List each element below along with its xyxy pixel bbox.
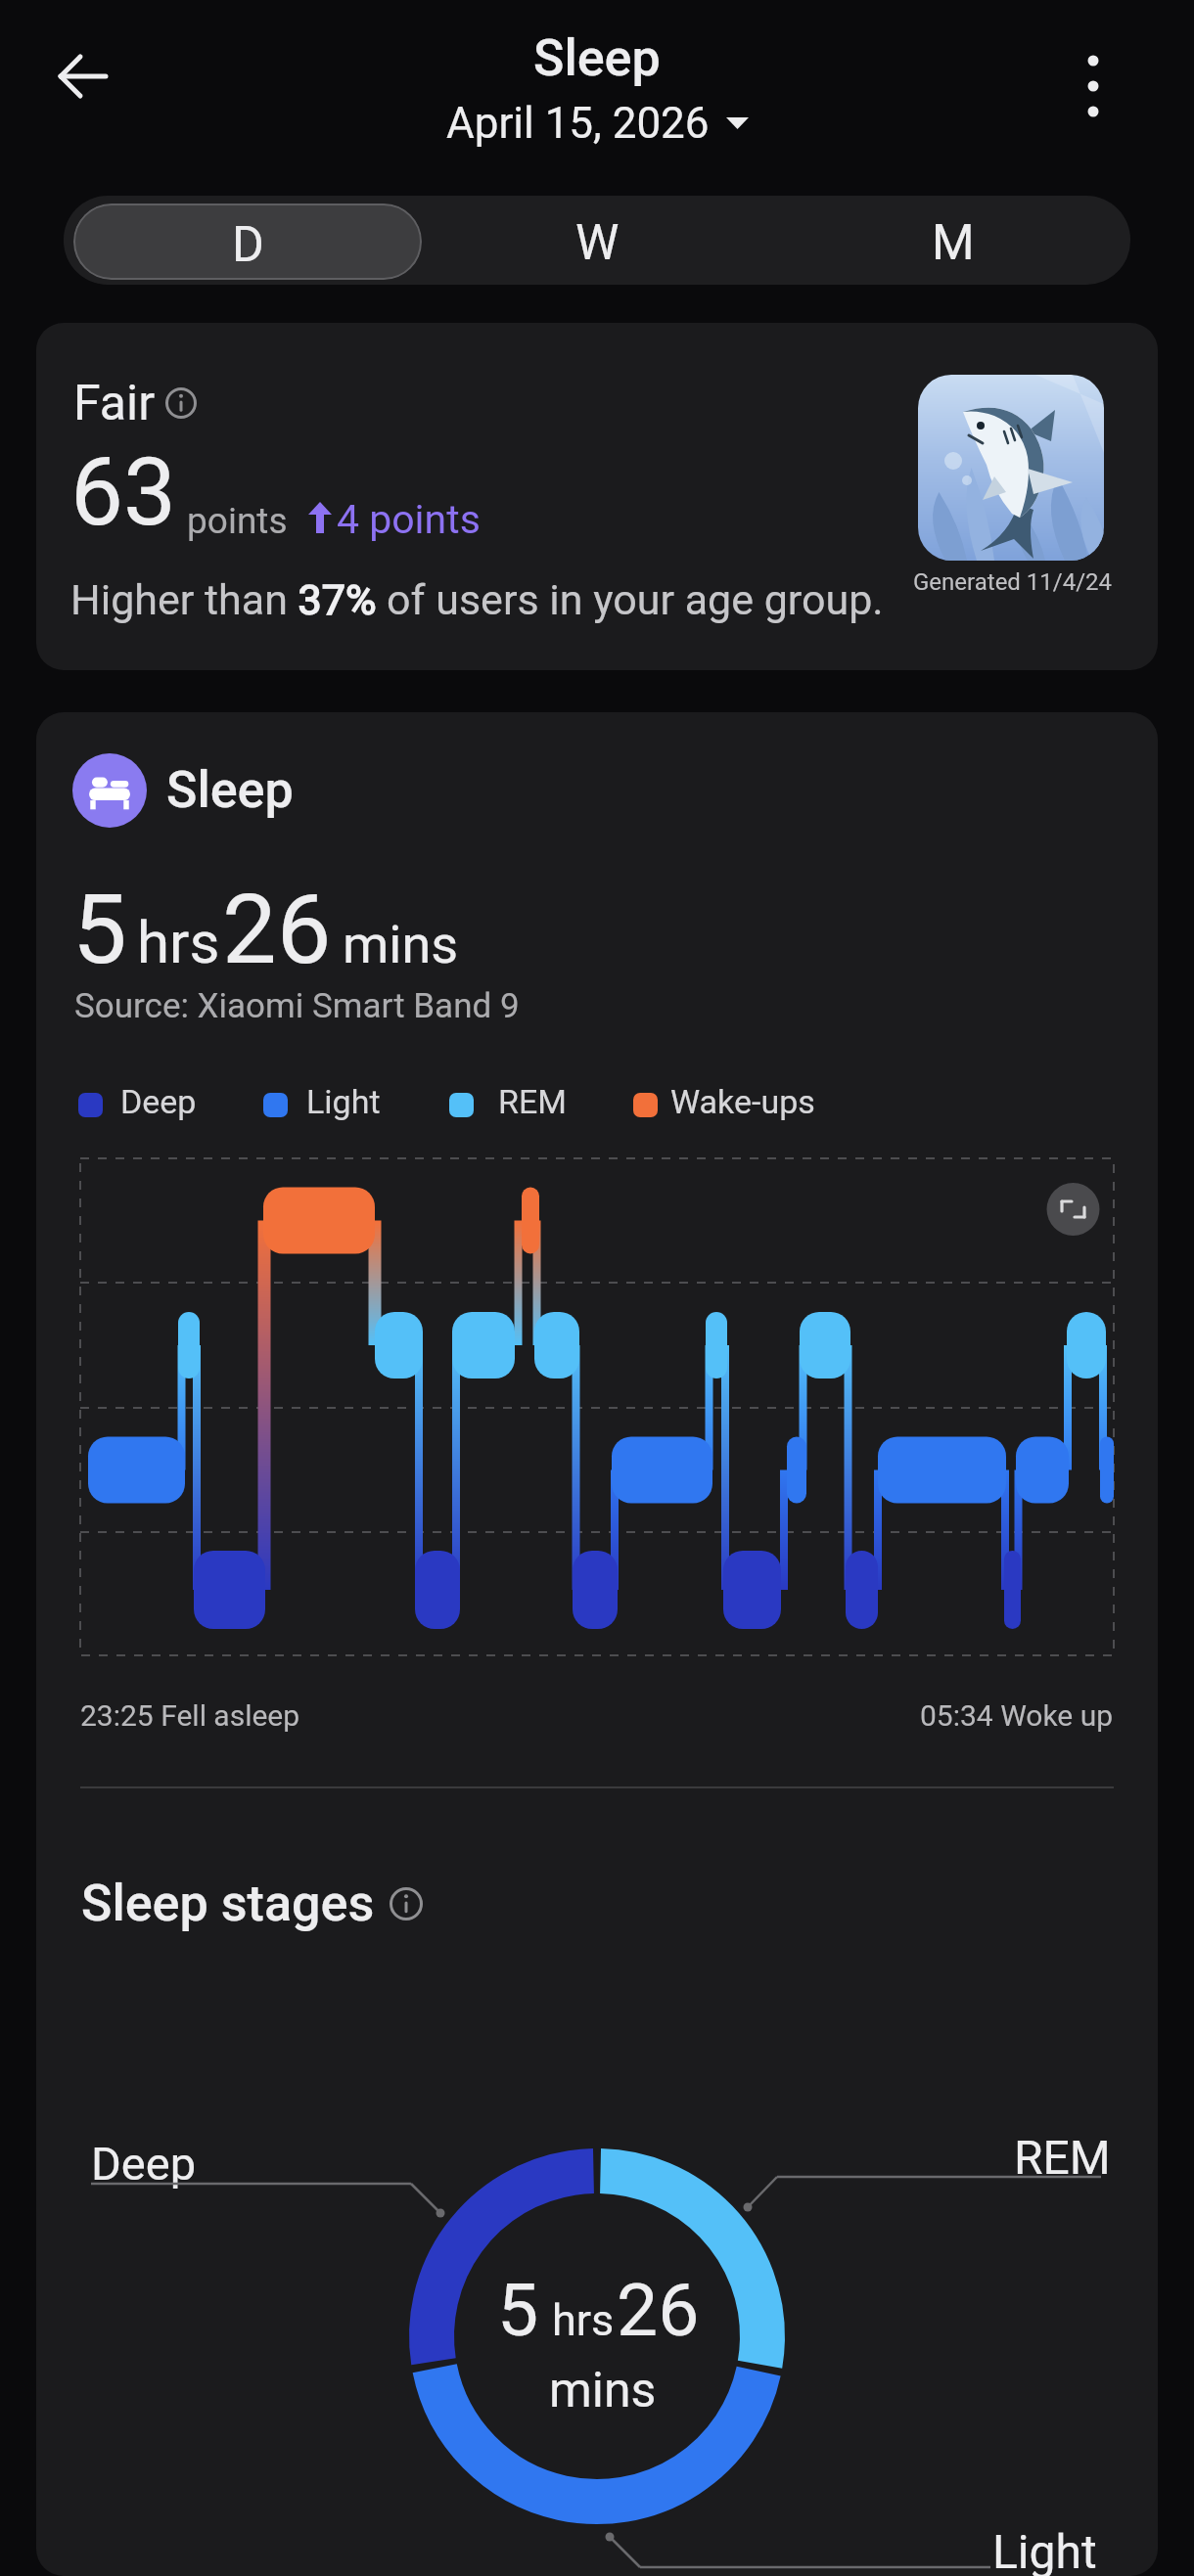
staticText: Wake-ups [670, 1082, 815, 1121]
button[interactable]: April 15, 2026 [446, 98, 749, 149]
staticText: Deep [120, 1082, 197, 1121]
staticText: 23:25 Fell asleep [80, 1698, 300, 1733]
staticText: 4 points [337, 496, 481, 543]
staticText: 05:34 Woke up [920, 1698, 1114, 1733]
staticText: 5 [72, 873, 127, 986]
staticText: 63 [70, 437, 176, 548]
button[interactable]: M [775, 196, 1130, 285]
staticText: Sleep [166, 760, 294, 820]
staticText: Source: Xiaomi Smart Band 9 [74, 986, 520, 1026]
staticText: Light [306, 1082, 381, 1121]
staticText: 5 [497, 2267, 539, 2353]
staticText: points [187, 500, 288, 542]
button[interactable]: D [73, 203, 422, 280]
staticText: REM [498, 1082, 567, 1121]
button[interactable] [1046, 1183, 1099, 1236]
staticText: Sleep stages [81, 1874, 375, 1933]
button[interactable] [44, 37, 122, 115]
staticText: M [932, 214, 975, 272]
button[interactable] [1056, 49, 1130, 123]
staticText: D [232, 216, 264, 274]
staticText: Light [992, 2524, 1097, 2576]
staticText: Sleep [533, 28, 661, 88]
staticText: hrs [552, 2294, 615, 2346]
staticText: Higher than 37% of users in your age gro… [70, 575, 884, 624]
staticText: mins [343, 914, 459, 975]
staticText: April 15, 2026 [446, 98, 710, 149]
button[interactable]: Fair [36, 323, 1158, 670]
staticText: Generated 11/4/24 [913, 568, 1113, 596]
staticText: Fair [73, 375, 156, 432]
staticText: hrs [137, 908, 220, 976]
staticText: REM [1014, 2130, 1111, 2185]
staticText: W [575, 214, 620, 272]
staticText: Deep [91, 2137, 197, 2191]
staticText: 26 [222, 873, 332, 986]
staticText: 26 [617, 2267, 700, 2353]
button[interactable]: W [419, 196, 775, 285]
staticText: mins [549, 2362, 657, 2419]
